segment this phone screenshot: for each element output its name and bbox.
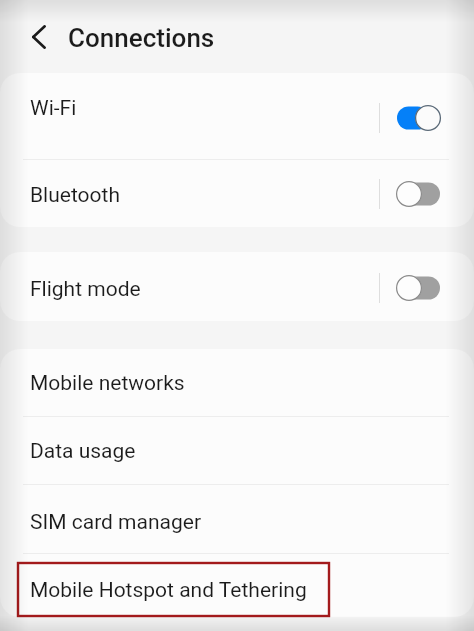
button[interactable] (0, 484, 474, 553)
button[interactable] (0, 159, 474, 227)
button[interactable]: Turn on (396, 180, 442, 208)
staticText: Wi-Fi (30, 96, 77, 121)
staticText: Bluetooth (30, 183, 120, 208)
button[interactable] (0, 416, 474, 484)
button[interactable] (0, 349, 474, 416)
button[interactable]: Back (21, 13, 57, 60)
staticText: Mobile Hotspot and Tethering (30, 578, 307, 603)
staticText: Mobile networks (30, 371, 185, 396)
button[interactable] (0, 553, 474, 617)
button[interactable] (0, 73, 474, 159)
button[interactable]: Turn on (396, 274, 442, 302)
button[interactable] (0, 252, 474, 321)
staticText: SIM card manager (30, 510, 202, 535)
button[interactable]: Turn off (396, 104, 442, 132)
staticText: Connections (68, 23, 215, 53)
staticText: Flight mode (30, 277, 141, 302)
staticText: Data usage (30, 439, 136, 464)
